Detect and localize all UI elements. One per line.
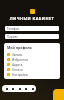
button[interactable]: Nav 3 (23, 86, 28, 91)
button[interactable]: Пароль (5, 34, 59, 39)
button[interactable]: Оплата (4, 67, 60, 72)
button[interactable]: Настройки (4, 72, 60, 77)
button[interactable]: Nav 0 (4, 86, 9, 91)
staticText: Пароль (7, 35, 18, 39)
button[interactable]: Action (53, 89, 64, 100)
button[interactable]: Заказы (4, 52, 60, 57)
staticText: Адреса (12, 63, 23, 67)
staticText: Заказы (12, 53, 23, 57)
staticText: Мой профиль (7, 45, 32, 50)
button[interactable]: Logo (30, 9, 35, 14)
button[interactable]: Телефон (5, 26, 59, 31)
staticText: Оплата (12, 68, 23, 72)
staticText: Избранное (12, 58, 29, 62)
button[interactable]: Nav 4 (30, 86, 35, 91)
button[interactable]: Nav 1 (10, 86, 15, 91)
staticText: Телефон (7, 27, 20, 31)
staticText: Настройки (12, 73, 28, 77)
button[interactable]: Избранное (4, 57, 60, 62)
staticText: ЛИЧНЫЙ КАБИНЕТ (0, 16, 64, 21)
button[interactable]: Nav 2 (17, 86, 22, 91)
button[interactable]: Адреса (4, 62, 60, 67)
